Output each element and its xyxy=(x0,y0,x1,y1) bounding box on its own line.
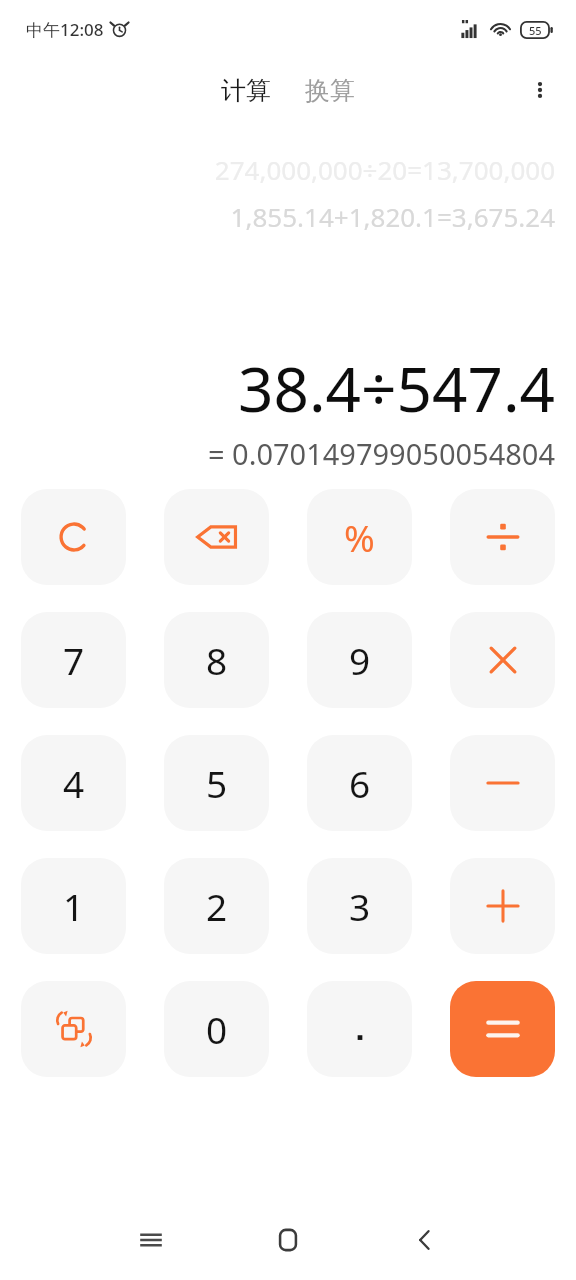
button[interactable]: Decimal point xyxy=(307,981,412,1077)
staticText: 3 xyxy=(349,881,371,931)
button[interactable]: 7 xyxy=(21,612,126,708)
button[interactable]: 8 xyxy=(164,612,269,708)
staticText: 8 xyxy=(206,635,228,685)
button[interactable]: Clear xyxy=(21,489,126,585)
staticText: 274,000,000÷20=13,700,000 xyxy=(214,152,555,187)
button[interactable]: 2 xyxy=(164,858,269,954)
button[interactable]: Backspace xyxy=(164,489,269,585)
staticText: 55 xyxy=(529,23,542,38)
button[interactable]: 3 xyxy=(307,858,412,954)
button[interactable]: Unit conversion xyxy=(21,981,126,1077)
staticText: 换算 xyxy=(305,75,355,106)
button[interactable]: 计算 xyxy=(213,71,279,110)
button[interactable]: 9 xyxy=(307,612,412,708)
button[interactable]: 4 xyxy=(21,735,126,831)
staticText: 5 xyxy=(206,758,228,808)
staticText: 6 xyxy=(349,758,371,808)
button[interactable]: 1 xyxy=(21,858,126,954)
button[interactable]: 换算 xyxy=(297,71,363,110)
button[interactable]: Multiply xyxy=(450,612,555,708)
staticText: 0 xyxy=(206,1004,228,1054)
staticText: 4 xyxy=(63,758,85,808)
button[interactable]: Equals xyxy=(450,981,555,1077)
button[interactable]: 5 xyxy=(164,735,269,831)
staticText: 计算 xyxy=(221,75,271,106)
staticText: % xyxy=(344,512,375,562)
button[interactable]: Back xyxy=(402,1217,448,1263)
button[interactable]: Home xyxy=(265,1217,311,1263)
button[interactable]: % xyxy=(307,489,412,585)
staticText: 9 xyxy=(349,635,371,685)
button[interactable]: Recent apps xyxy=(128,1217,174,1263)
staticText: 38.4÷547.4 xyxy=(238,346,555,430)
staticText: 1,855.14+1,820.1=3,675.24 xyxy=(230,199,555,234)
staticText: 中午12:08 xyxy=(26,18,104,41)
button[interactable]: Divide xyxy=(450,489,555,585)
button[interactable]: Minus xyxy=(450,735,555,831)
staticText: = 0.070149799050054804 xyxy=(207,434,555,473)
staticText: 7 xyxy=(63,635,85,685)
staticText: 1 xyxy=(63,881,85,931)
button[interactable]: More options xyxy=(518,68,562,112)
button[interactable]: 6 xyxy=(307,735,412,831)
button[interactable]: Plus xyxy=(450,858,555,954)
button[interactable]: 274,000,000÷20=13,700,000 xyxy=(0,122,576,234)
staticText: 2 xyxy=(206,881,228,931)
button[interactable]: 0 xyxy=(164,981,269,1077)
